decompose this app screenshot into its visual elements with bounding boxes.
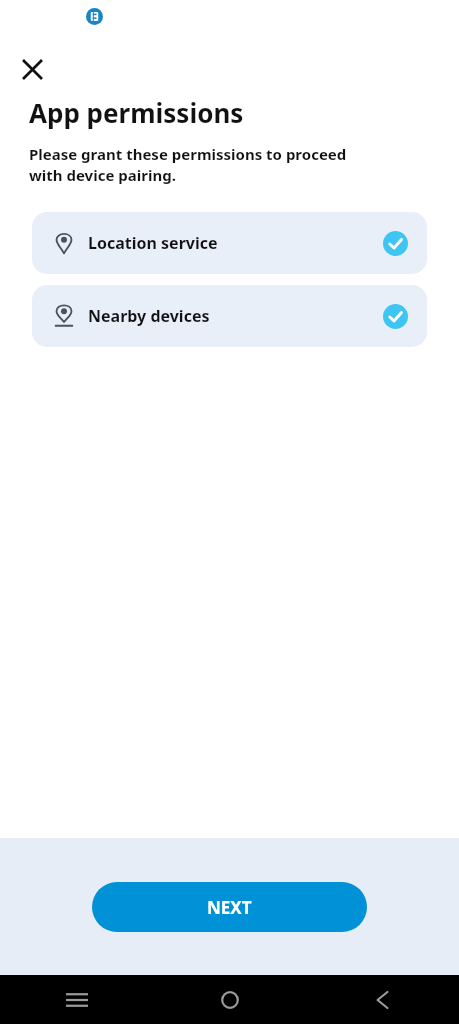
- staticText: Please grant these permissions to procee…: [29, 144, 347, 186]
- staticText: NEXT: [207, 896, 252, 919]
- button[interactable]: Back: [306, 975, 459, 1024]
- button[interactable]: Location service: [32, 212, 427, 274]
- button[interactable]: Close: [13, 50, 51, 88]
- button[interactable]: Home: [153, 975, 306, 1024]
- button[interactable]: Nearby devices: [32, 285, 427, 347]
- staticText: Nearby devices: [88, 305, 210, 327]
- staticText: Location service: [88, 232, 218, 254]
- staticText: App permissions: [29, 95, 244, 130]
- button[interactable]: Recent apps: [0, 975, 153, 1024]
- button[interactable]: NEXT: [92, 882, 367, 932]
